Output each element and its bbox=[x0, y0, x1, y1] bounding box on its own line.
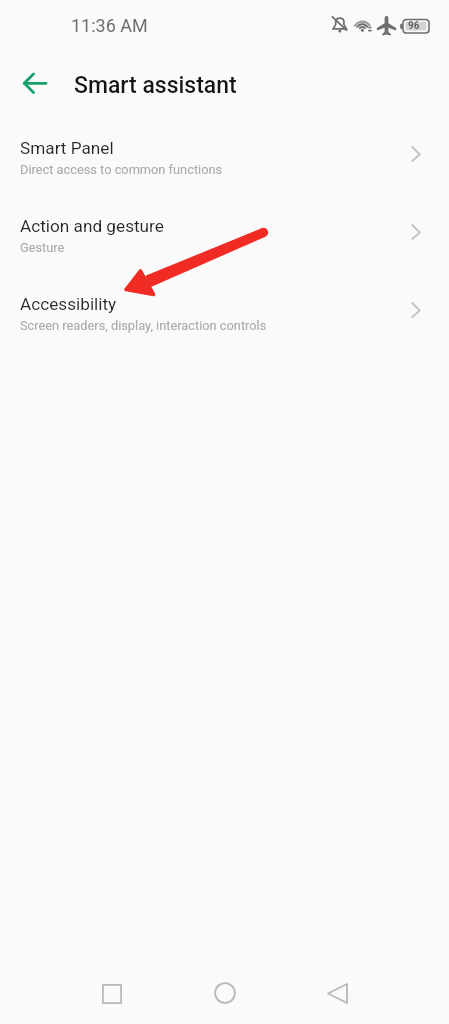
staticText: Smart assistant bbox=[74, 72, 237, 99]
staticText: Accessibility bbox=[20, 294, 117, 314]
button[interactable]: Accessibility bbox=[0, 274, 449, 352]
staticText: Action and gesture bbox=[20, 216, 164, 236]
button[interactable]: Recent apps bbox=[88, 970, 136, 1018]
button[interactable]: Back bbox=[313, 969, 361, 1017]
button[interactable]: Home bbox=[201, 969, 249, 1017]
staticText: Screen readers, display, interaction con… bbox=[20, 318, 267, 333]
staticText: 11:36 AM bbox=[71, 15, 148, 36]
staticText: Gesture bbox=[20, 240, 65, 255]
staticText: Direct access to common functions bbox=[20, 162, 223, 177]
button[interactable]: Back bbox=[13, 61, 57, 105]
button[interactable]: Smart Panel bbox=[0, 118, 449, 196]
staticText: 96 bbox=[408, 20, 420, 32]
button[interactable]: Action and gesture bbox=[0, 196, 449, 274]
staticText: Smart Panel bbox=[20, 138, 114, 158]
